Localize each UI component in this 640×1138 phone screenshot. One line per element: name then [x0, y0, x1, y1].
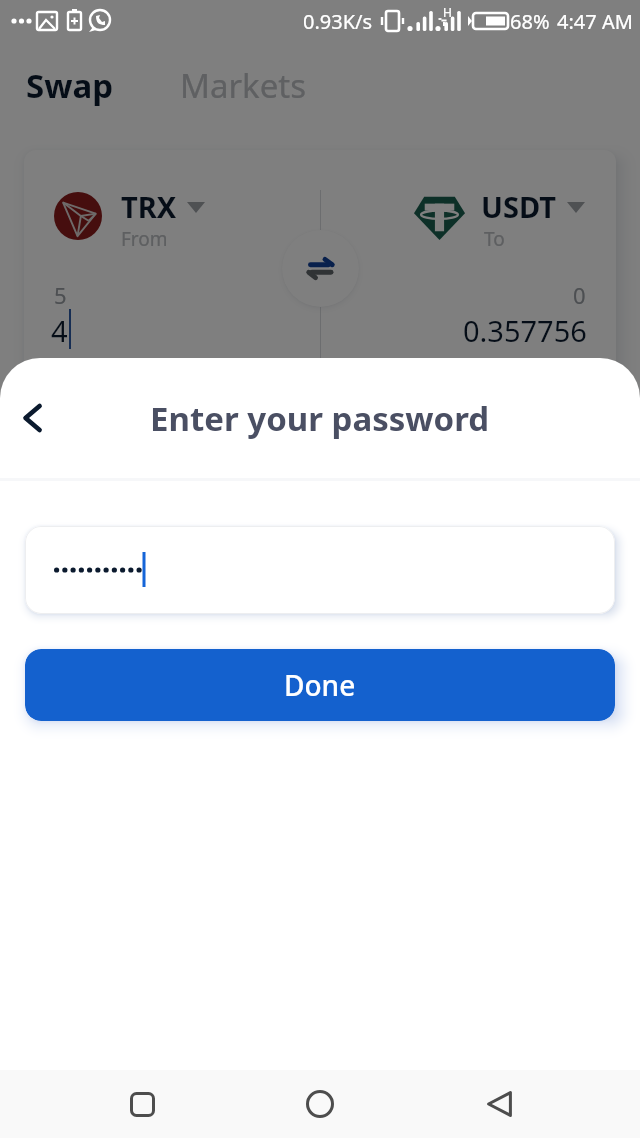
staticText: H	[443, 4, 452, 20]
button[interactable]: Recents	[117, 1079, 167, 1129]
staticText: Done	[284, 666, 356, 704]
staticText: To	[484, 226, 505, 252]
staticText: 68%	[510, 8, 550, 35]
staticText: USDT	[481, 187, 556, 226]
button[interactable]: Markets	[180, 63, 307, 108]
staticText: 5	[54, 280, 67, 310]
button[interactable]: Home	[295, 1079, 345, 1129]
staticText: Enter your password	[150, 396, 490, 441]
staticText: 0.93K/s	[303, 8, 373, 35]
button[interactable]: Back	[475, 1079, 525, 1129]
staticText: 0	[573, 280, 586, 310]
staticText: From	[121, 226, 168, 252]
staticText: 4:47 AM	[557, 8, 633, 35]
staticText: 68%	[510, 8, 550, 35]
button[interactable]: Swap	[26, 63, 114, 108]
staticText: 4	[51, 311, 68, 350]
button[interactable]	[25, 526, 615, 614]
staticText: TRX	[121, 187, 177, 226]
button[interactable]: Done	[25, 649, 615, 721]
button[interactable]: Swap direction	[282, 230, 359, 307]
staticText: H	[443, 4, 452, 20]
staticText: 4:47 AM	[557, 8, 633, 35]
staticText: 0.357756	[463, 311, 587, 350]
button[interactable]: Back	[8, 393, 58, 443]
staticText: 0.93K/s	[303, 8, 373, 35]
